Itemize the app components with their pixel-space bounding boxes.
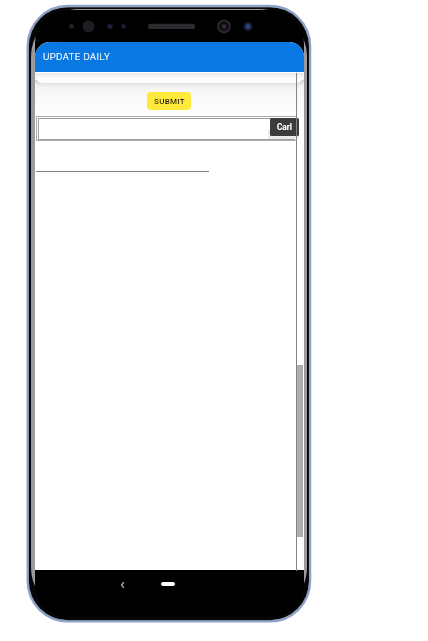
staticText: Carl [277,122,292,132]
button[interactable]: Home [151,574,182,596]
staticText: SUBMIT [154,97,185,106]
button[interactable]: Back [111,574,133,596]
staticText: UPDATE DAILY [43,51,111,62]
button[interactable]: SUBMIT [147,92,191,110]
button[interactable]: UPDATE DAILY [35,42,304,72]
button[interactable]: Carl [270,118,299,136]
button[interactable] [36,116,296,141]
